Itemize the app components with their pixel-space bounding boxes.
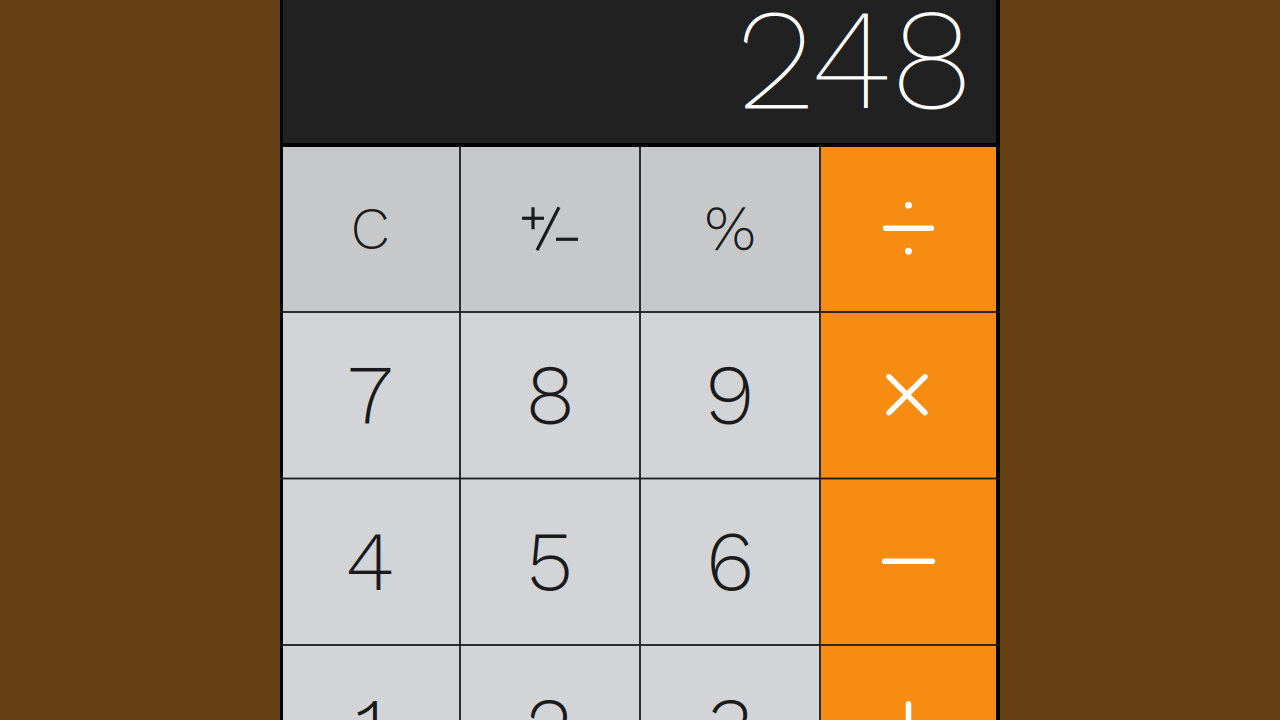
staticText: 1	[355, 678, 384, 720]
button[interactable]: 1	[280, 645, 460, 720]
button[interactable]: 6	[640, 478, 820, 645]
button[interactable]: Multiply	[820, 312, 1000, 478]
staticText: 5	[526, 512, 573, 610]
staticText: 2	[526, 678, 573, 720]
button[interactable]: C	[280, 145, 460, 312]
staticText: 7	[348, 345, 392, 444]
button[interactable]: %	[640, 145, 820, 312]
button[interactable]: 7	[280, 312, 460, 478]
staticText: 6	[706, 512, 754, 610]
button[interactable]: 3	[640, 645, 820, 720]
button[interactable]: 2	[460, 645, 640, 720]
staticText: 8	[525, 345, 574, 444]
staticText: 4	[345, 512, 394, 610]
staticText: C	[350, 194, 389, 263]
button[interactable]: 9	[640, 312, 820, 478]
button[interactable]: Plus	[820, 645, 1000, 720]
button[interactable]: Plus minus	[460, 145, 640, 312]
button[interactable]: 5	[460, 478, 640, 645]
button[interactable]: Divide	[820, 145, 1000, 312]
staticText: 3	[707, 678, 753, 720]
staticText: 9	[705, 345, 755, 444]
button[interactable]: 4	[280, 478, 460, 645]
staticText: %	[704, 191, 755, 266]
button[interactable]: 8	[460, 312, 640, 478]
button[interactable]: Minus	[820, 478, 1000, 645]
staticText: 248	[737, 0, 972, 143]
